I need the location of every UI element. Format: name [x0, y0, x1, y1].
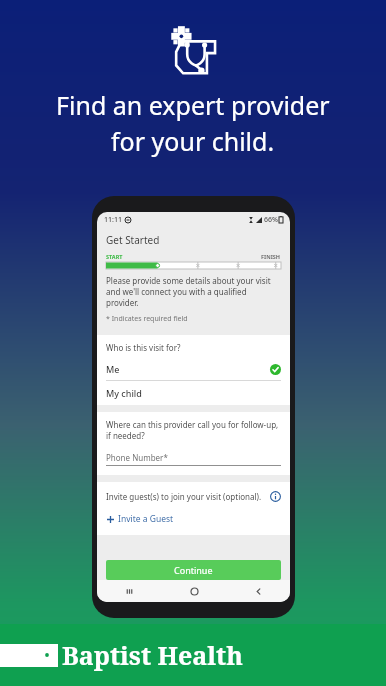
staticText: FINISH [261, 253, 281, 260]
staticText: Please provide some details about your v… [106, 275, 281, 308]
staticText: START [106, 253, 123, 260]
staticText: Invite a Guest [118, 513, 174, 525]
staticText: Find an expert provider [56, 88, 330, 122]
button[interactable]: More information [270, 491, 281, 502]
staticText: Baptist Health [62, 638, 243, 672]
button[interactable]: Recents [97, 580, 162, 602]
button[interactable]: Back [226, 580, 290, 602]
button[interactable]: Phone Number* [106, 452, 168, 463]
staticText: Get Started [106, 233, 160, 247]
staticText: Who is this visit for? [106, 342, 181, 353]
button[interactable]: Home [162, 580, 226, 602]
staticText: * Indicates required field [106, 314, 188, 324]
staticText: Me [106, 363, 120, 375]
button[interactable]: Invite a Guest [106, 513, 174, 525]
staticText: Continue [174, 564, 213, 576]
staticText: Invite guest(s) to join your visit (opti… [106, 491, 262, 502]
staticText: Where can this provider call you for fol… [106, 419, 281, 441]
button[interactable]: My child [97, 381, 290, 405]
button[interactable]: Continue [106, 560, 281, 580]
staticText: 11:11 [104, 215, 122, 225]
button[interactable]: Me [97, 358, 290, 380]
staticText: My child [106, 387, 142, 399]
staticText: for your child. [111, 124, 275, 158]
staticText: 66% [264, 215, 278, 225]
